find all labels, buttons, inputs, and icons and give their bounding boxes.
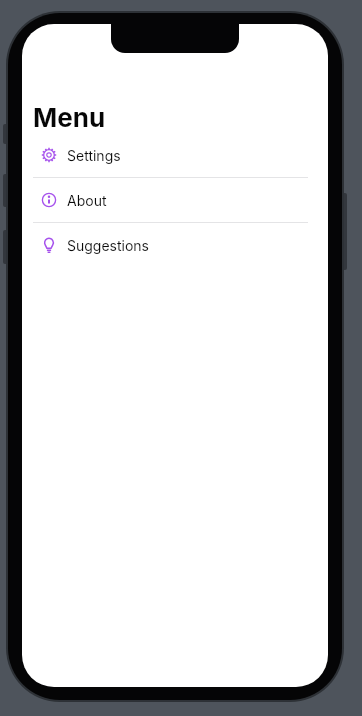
button[interactable]: Suggestions <box>33 223 317 267</box>
staticText: Menu <box>33 102 106 133</box>
staticText: Settings <box>67 147 121 164</box>
button[interactable]: About <box>33 178 317 222</box>
staticText: Suggestions <box>67 237 150 254</box>
button[interactable]: Settings <box>33 133 317 177</box>
staticText: About <box>67 192 107 209</box>
